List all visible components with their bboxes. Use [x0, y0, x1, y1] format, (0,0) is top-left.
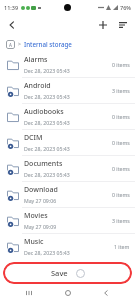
staticText: Download [24, 185, 58, 195]
staticText: 1 item [114, 243, 130, 250]
staticText: 0 items [112, 139, 130, 146]
staticText: Save [51, 268, 68, 278]
staticText: 3 items [112, 87, 130, 94]
button[interactable]: Add folder [94, 16, 112, 34]
button[interactable]: Audiobooks [0, 104, 135, 129]
staticText: Dec 28, 2023 05:43 [24, 249, 70, 256]
staticText: May 27 09:06 [24, 197, 57, 204]
button[interactable]: Home [58, 286, 78, 300]
staticText: Documents [24, 159, 63, 169]
button[interactable]: Recents [19, 286, 39, 300]
staticText: Android [24, 81, 51, 91]
staticText: Dec 28, 2023 05:43 [24, 119, 70, 126]
staticText: Movies [24, 211, 48, 221]
staticText: 0 items [112, 191, 130, 198]
button[interactable]: Movies [0, 208, 135, 233]
staticText: 3 items [112, 217, 130, 224]
button[interactable]: Android [0, 78, 135, 103]
button[interactable]: Download [0, 182, 135, 207]
staticText: 0 items [112, 113, 130, 120]
staticText: 11:39 [4, 4, 19, 11]
staticText: 0 items [112, 165, 130, 172]
staticText: > [18, 41, 21, 48]
button[interactable]: Alarms [0, 52, 135, 77]
button[interactable]: Music [0, 234, 135, 259]
button[interactable]: Documents [0, 156, 135, 181]
button[interactable]: Save [6, 265, 129, 281]
staticText: Audiobooks [24, 107, 64, 117]
staticText: Dec 28, 2023 05:43 [24, 93, 70, 100]
staticText: Alarms [24, 55, 48, 65]
staticText: A [9, 42, 12, 48]
button[interactable]: A [6, 36, 135, 52]
button[interactable]: Back [3, 16, 21, 34]
staticText: Internal storage [24, 40, 72, 48]
staticText: Dec 28, 2023 05:43 [24, 145, 70, 152]
button[interactable]: Back [96, 286, 116, 300]
staticText: 76% [120, 4, 131, 11]
staticText: May 27 09:09 [24, 223, 57, 230]
staticText: Music [24, 237, 44, 247]
staticText: DCIM [24, 133, 43, 143]
button[interactable]: DCIM [0, 130, 135, 155]
staticText: 0 items [112, 61, 130, 68]
button[interactable]: Sort [114, 16, 132, 34]
staticText: Dec 28, 2023 05:43 [24, 171, 70, 178]
staticText: Dec 28, 2023 05:43 [24, 67, 70, 74]
